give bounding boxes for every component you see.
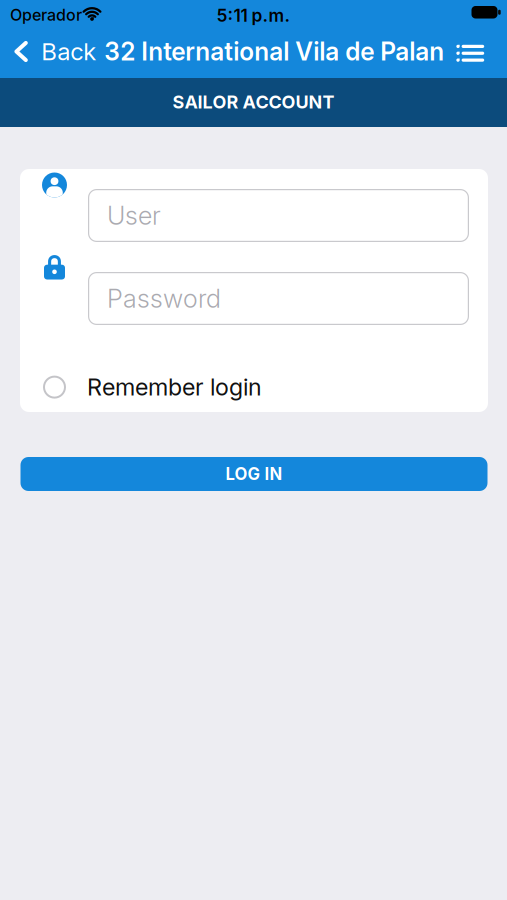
button[interactable]: Back xyxy=(0,37,96,66)
button[interactable]: Menu xyxy=(456,37,507,66)
staticText: User xyxy=(107,200,161,231)
staticText: Password xyxy=(107,283,221,314)
staticText: 5:11 p.m. xyxy=(216,5,290,26)
button[interactable]: LOG IN xyxy=(20,457,487,491)
staticText: Back xyxy=(41,37,96,66)
button[interactable]: User xyxy=(88,189,469,242)
staticText: LOG IN xyxy=(225,464,282,484)
staticText: SAILOR ACCOUNT xyxy=(172,91,334,113)
button[interactable]: Remember login xyxy=(43,373,262,401)
staticText: Remember login xyxy=(87,373,262,401)
staticText: Operador xyxy=(10,5,82,25)
button[interactable]: Password xyxy=(88,272,469,325)
staticText: 32 International Vila de Palan xyxy=(104,37,444,66)
